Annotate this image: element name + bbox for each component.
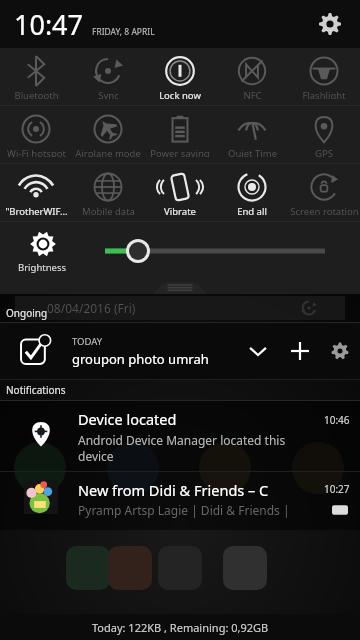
staticText: 10:46 bbox=[324, 413, 350, 427]
staticText: TODAY bbox=[72, 335, 103, 348]
staticText: Android Device Manager located this devi… bbox=[78, 432, 298, 464]
staticText: Notifications bbox=[6, 383, 66, 397]
button[interactable]: Wi-Fi hotspot bbox=[0, 106, 72, 163]
staticText: Airplane mode bbox=[75, 147, 141, 157]
button[interactable]: Sync bbox=[72, 48, 144, 105]
button[interactable]: Lock now bbox=[144, 48, 216, 105]
staticText: FRIDAY, 8 APRIL bbox=[92, 26, 155, 38]
staticText: Today: 122KB , Remaining: 0,92GB bbox=[92, 620, 269, 635]
staticText: Quiet Time bbox=[228, 147, 277, 157]
staticText: End all bbox=[237, 205, 267, 215]
staticText: Ongoing bbox=[6, 306, 48, 320]
button[interactable]: Airplane mode bbox=[72, 106, 144, 163]
button[interactable]: Screen rotation bbox=[288, 164, 360, 221]
button[interactable]: Notification settings bbox=[320, 331, 360, 371]
button[interactable]: Add bbox=[280, 331, 320, 371]
staticText: Pyramp Artsp Lagie | Didi & Friends | B bbox=[78, 502, 300, 518]
staticText: groupon photo umrah bbox=[72, 350, 209, 368]
button[interactable]: Flashlight bbox=[288, 48, 360, 105]
staticText: Vibrate bbox=[164, 205, 196, 215]
staticText: Bluetooth bbox=[14, 89, 59, 99]
staticText: "BrotherWIF... bbox=[5, 205, 68, 215]
button[interactable]: Bluetooth bbox=[0, 48, 72, 105]
staticText: Screen rotation bbox=[290, 205, 359, 215]
staticText: Wi-Fi hotspot bbox=[7, 147, 66, 157]
staticText: 10:47 bbox=[14, 6, 84, 43]
button[interactable]: NFC bbox=[216, 48, 288, 105]
button[interactable]: Quiet Time bbox=[216, 106, 288, 163]
staticText: 08/04/2016 (Fri) bbox=[47, 300, 136, 316]
button[interactable]: New from Didi & Friends – C bbox=[0, 472, 360, 530]
button[interactable]: Power saving bbox=[144, 106, 216, 163]
staticText: New from Didi & Friends – C bbox=[78, 480, 269, 500]
staticText: GPS bbox=[315, 147, 333, 157]
button[interactable]: Brightness slider bbox=[105, 239, 325, 263]
button[interactable]: GPS bbox=[288, 106, 360, 163]
staticText: Mobile data bbox=[82, 205, 135, 215]
button[interactable]: Settings bbox=[314, 8, 346, 40]
staticText: Flashlight bbox=[302, 89, 346, 99]
button[interactable]: Today: 122KB , Remaining: 0,92GB bbox=[0, 614, 360, 640]
staticText: 10:27 bbox=[324, 482, 350, 496]
button[interactable]: End all bbox=[216, 164, 288, 221]
staticText: Device located bbox=[78, 409, 177, 429]
button[interactable]: TODAY bbox=[0, 323, 360, 379]
button[interactable]: Mobile data bbox=[72, 164, 144, 221]
button[interactable]: "BrotherWIF... bbox=[0, 164, 72, 221]
button[interactable]: Device located bbox=[0, 401, 360, 471]
button[interactable]: Vibrate bbox=[144, 164, 216, 221]
staticText: Power saving bbox=[150, 147, 210, 157]
staticText: NFC bbox=[243, 89, 262, 99]
staticText: Brightness bbox=[18, 261, 67, 274]
button[interactable]: Expand bbox=[236, 329, 280, 373]
button[interactable]: Brightness bbox=[18, 230, 67, 274]
staticText: Lock now bbox=[159, 89, 201, 99]
staticText: Sync bbox=[98, 89, 119, 99]
